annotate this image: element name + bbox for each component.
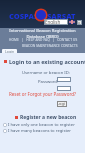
button[interactable]: Login	[57, 101, 67, 107]
staticText: Register a new beacon	[20, 114, 77, 121]
staticText: Password:	[38, 79, 59, 85]
button[interactable]: English	[44, 19, 68, 25]
button[interactable]: Register a new beacon	[15, 114, 77, 121]
staticText: Username or beacon ID:	[22, 70, 70, 76]
staticText: I have many beacons to register	[8, 128, 72, 134]
button[interactable]: BEACON MAINTENANCE CONTACTS	[22, 44, 78, 48]
staticText: International Beacon Registration Databa…	[0, 28, 85, 40]
button[interactable]: Close	[77, 20, 82, 25]
staticText: Login	[57, 101, 67, 107]
staticText: Login	[5, 49, 15, 53]
button[interactable]: I have only one beacon to register	[3, 122, 75, 128]
staticText: COSPAS	[9, 11, 39, 21]
staticText: Reset or Forgot your Password?	[9, 91, 76, 97]
staticText: SARSAT	[47, 11, 76, 21]
button[interactable]: I have many beacons to register	[3, 128, 72, 134]
other: English language	[69, 20, 75, 24]
button[interactable]: Login	[2, 49, 17, 53]
staticText: x	[78, 20, 81, 25]
staticText: English	[45, 19, 61, 25]
button[interactable]: Reset or Forgot your Password?	[0, 91, 85, 97]
staticText: Login to an existing account	[9, 58, 85, 65]
other: Cospas-Sarsat logo	[34, 8, 48, 22]
button[interactable]: HOME | HELP AND FAQ | CONTACT US	[9, 38, 78, 42]
staticText: I have only one beacon to register	[8, 122, 75, 128]
button[interactable]: Login to an existing account	[4, 58, 85, 65]
